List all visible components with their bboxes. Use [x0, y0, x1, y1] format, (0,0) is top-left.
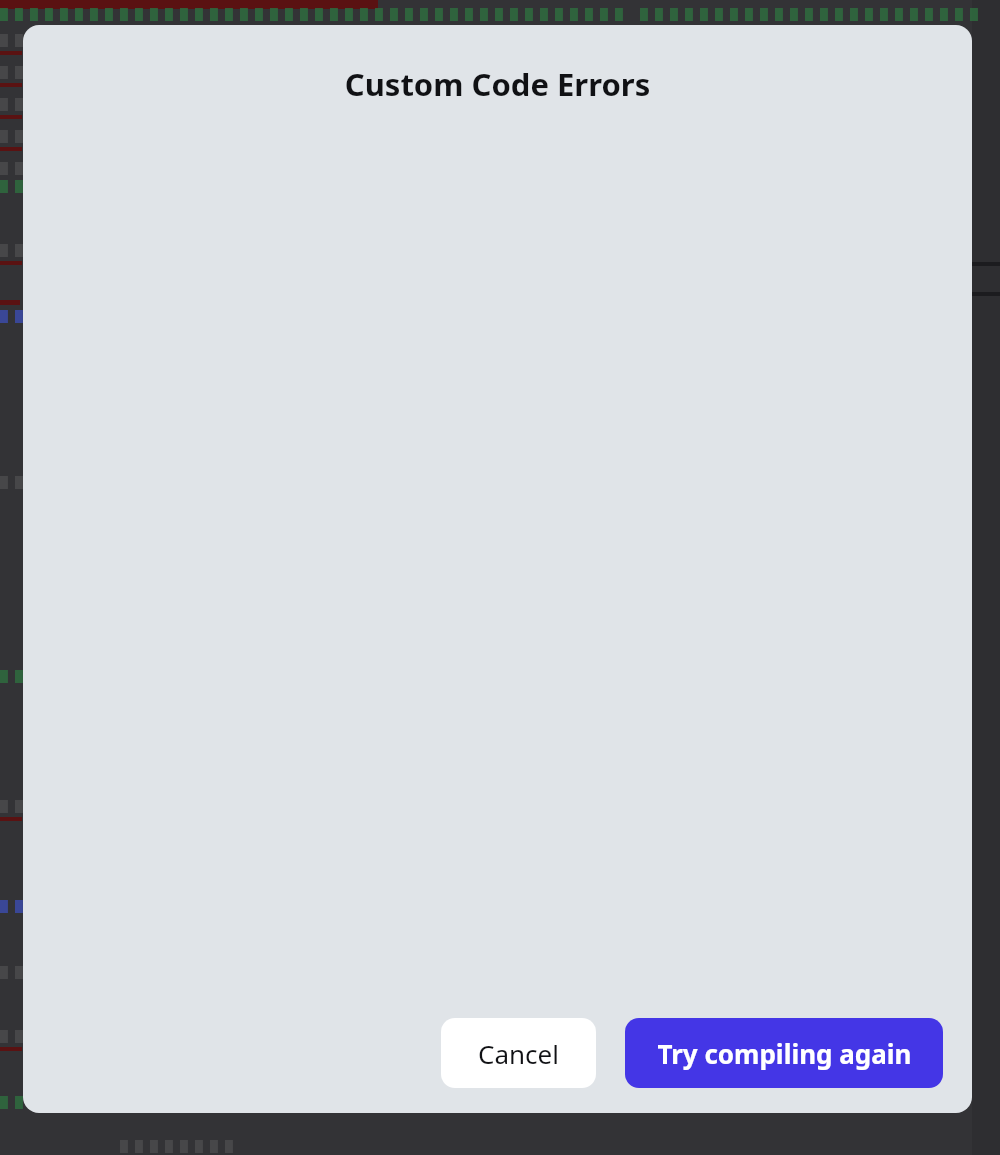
staticText: Cancel	[478, 1036, 559, 1071]
staticText: Try compiling again	[657, 1036, 912, 1071]
staticText: Custom Code Errors	[23, 63, 972, 105]
button[interactable]: Cancel	[441, 1018, 596, 1088]
button[interactable]: Try compiling again	[625, 1018, 943, 1088]
